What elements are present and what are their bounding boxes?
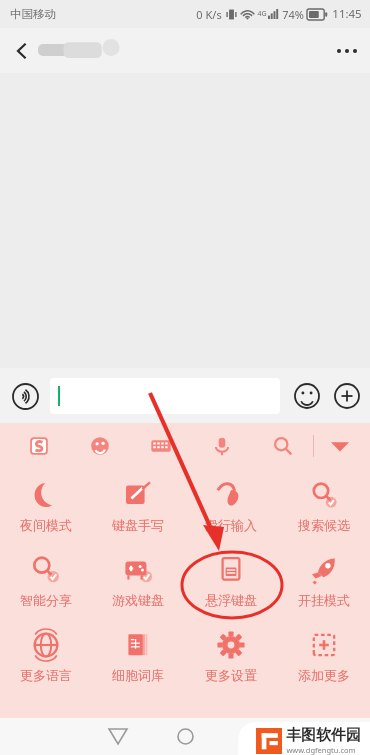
staticText: 添加更多 — [298, 667, 350, 683]
staticText: 智能分享 — [20, 592, 72, 608]
staticText: 悬浮键盘 — [205, 592, 257, 608]
staticText: 中国移动 — [10, 7, 56, 21]
button[interactable]: Expression — [69, 423, 130, 469]
staticText: 丰图软件园 — [286, 726, 361, 745]
button[interactable]: 夜间模式 — [0, 469, 92, 544]
staticText: 游戏键盘 — [112, 592, 164, 608]
button[interactable]: 细胞词库 — [92, 619, 184, 694]
button[interactable]: 添加更多 — [277, 619, 370, 694]
staticText: 更多设置 — [205, 667, 257, 683]
button[interactable]: 开挂模式 — [277, 544, 370, 619]
button[interactable]: Back — [0, 29, 44, 73]
button[interactable]: Keyboard — [130, 423, 191, 469]
button[interactable]: Collapse — [314, 423, 366, 469]
button[interactable]: Sogou — [8, 423, 69, 469]
staticText: 滑行输入 — [205, 517, 257, 533]
staticText: 11:45 — [332, 6, 362, 22]
staticText: 细胞词库 — [112, 667, 164, 683]
button[interactable]: Add — [330, 379, 364, 413]
button[interactable]: 悬浮键盘 — [184, 544, 277, 619]
staticText: www.dgfengtu.com — [286, 745, 356, 755]
button[interactable]: 更多设置 — [184, 619, 277, 694]
button[interactable]: 键盘手写 — [92, 469, 184, 544]
staticText: 0 K/s — [196, 7, 222, 22]
staticText: 搜索候选 — [298, 517, 350, 533]
button[interactable]: 游戏键盘 — [92, 544, 184, 619]
button[interactable]: Voice — [191, 423, 252, 469]
button[interactable]: Emoji — [290, 379, 324, 413]
button[interactable]: Back — [96, 718, 140, 755]
staticText: 更多语言 — [20, 667, 72, 683]
button[interactable]: Voice input — [6, 377, 44, 415]
button[interactable]: Search — [252, 423, 313, 469]
button[interactable]: 滑行输入 — [184, 469, 277, 544]
button[interactable]: More options — [324, 28, 370, 73]
staticText: 74% — [282, 7, 304, 22]
staticText: 键盘手写 — [112, 517, 164, 533]
button[interactable]: 搜索候选 — [277, 469, 370, 544]
button[interactable]: 更多语言 — [0, 619, 92, 694]
staticText: 4G — [257, 9, 267, 19]
staticText: 夜间模式 — [20, 517, 72, 533]
button[interactable]: 智能分享 — [0, 544, 92, 619]
button[interactable]: Home — [163, 718, 207, 755]
staticText: 开挂模式 — [298, 592, 350, 608]
button[interactable] — [50, 378, 280, 414]
